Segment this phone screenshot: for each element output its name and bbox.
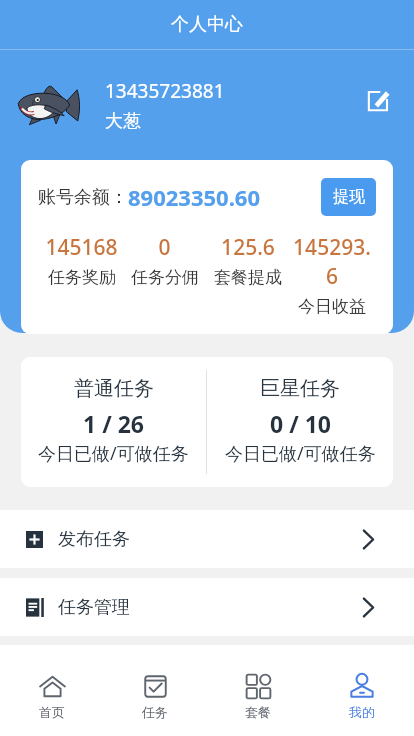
button[interactable]: 首页 — [0, 672, 103, 720]
staticText: 发布任务 — [58, 528, 130, 551]
staticText: 大葱 — [105, 110, 141, 133]
button[interactable]: 提现 — [321, 178, 376, 216]
staticText: 任务奖励 — [48, 267, 116, 288]
staticText: 125.6 — [221, 233, 275, 262]
staticText: 今日收益 — [298, 296, 366, 317]
staticText: 巨星任务 — [260, 376, 340, 401]
staticText: 提现 — [333, 187, 365, 207]
staticText: 13435723881 — [105, 78, 225, 104]
staticText: 任务分佣 — [131, 267, 199, 288]
staticText: 任务管理 — [58, 596, 130, 619]
staticText: 套餐提成 — [214, 267, 282, 288]
staticText: 89023350.60 — [128, 182, 261, 212]
staticText: 145293.6 — [290, 233, 374, 291]
staticText: 1 / 26 — [83, 408, 144, 439]
staticText: 0 — [158, 233, 171, 262]
staticText: 0 / 10 — [270, 408, 331, 439]
staticText: 任务 — [142, 704, 168, 720]
button[interactable]: 编辑资料 — [355, 82, 401, 128]
staticText: 我的 — [349, 704, 375, 720]
staticText: 普通任务 — [74, 376, 154, 401]
staticText: 套餐 — [245, 704, 271, 720]
button[interactable]: 我的 — [310, 672, 414, 720]
staticText: 今日已做/可做任务 — [38, 441, 189, 466]
staticText: 账号余额： — [38, 186, 128, 209]
button[interactable]: 任务 — [103, 672, 206, 720]
staticText: 今日已做/可做任务 — [225, 441, 376, 466]
staticText: 首页 — [39, 704, 65, 720]
button[interactable]: 任务管理 — [0, 578, 414, 636]
button[interactable]: 套餐 — [206, 672, 310, 720]
button[interactable]: 发布任务 — [0, 510, 414, 568]
staticText: 个人中心 — [171, 13, 243, 36]
staticText: 145168 — [45, 233, 118, 262]
